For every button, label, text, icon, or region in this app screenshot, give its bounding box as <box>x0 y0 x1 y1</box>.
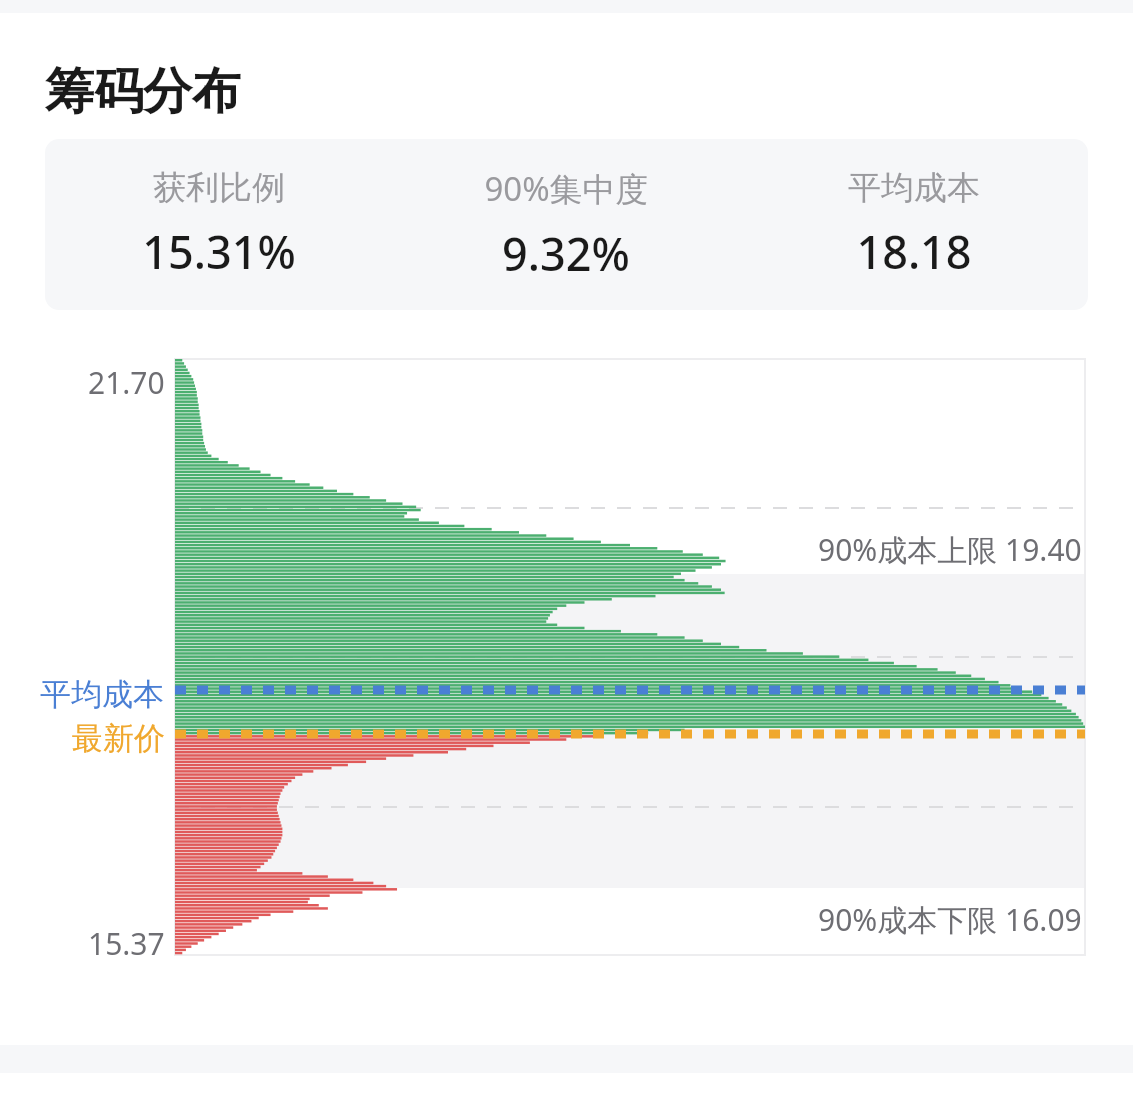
button[interactable]: 筹码分布 <box>45 61 241 123</box>
staticText: 9.32% <box>502 223 630 284</box>
staticText: 90%成本上限 19.40 <box>818 529 1082 570</box>
button[interactable]: 筹码分布图 <box>0 358 1133 958</box>
staticText: 平均成本 <box>40 675 164 714</box>
staticText: 15.31% <box>142 221 296 282</box>
staticText: 21.70 <box>88 362 165 403</box>
button[interactable]: 获利比例 <box>45 139 1088 310</box>
staticText: 90%集中度 <box>484 166 649 211</box>
staticText: 平均成本 <box>848 167 980 209</box>
staticText: 15.37 <box>88 923 165 964</box>
staticText: 90%成本下限 16.09 <box>818 899 1082 940</box>
staticText: 18.18 <box>856 221 972 282</box>
staticText: 筹码分布 <box>45 61 241 123</box>
staticText: 最新价 <box>72 719 165 758</box>
staticText: 获利比例 <box>153 167 285 209</box>
